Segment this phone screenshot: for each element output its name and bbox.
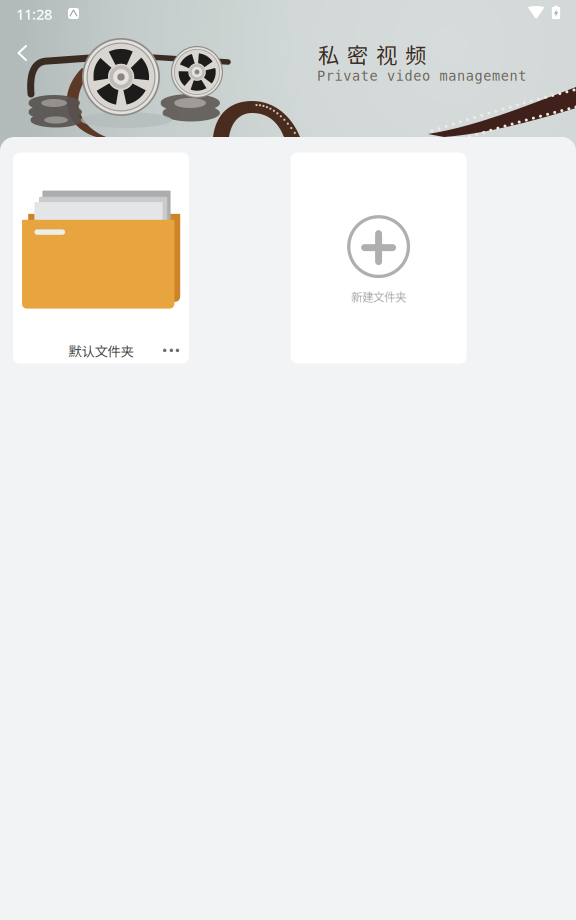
staticText: 新建文件夹 [351, 288, 406, 305]
staticText: 私密视频 [318, 39, 426, 69]
staticText: 11:28 [16, 4, 52, 24]
button[interactable]: Back [4, 38, 34, 68]
button[interactable]: 新建文件夹 [291, 153, 467, 364]
staticText: 默认文件夹 [68, 341, 133, 360]
staticText: Private video management [317, 68, 526, 84]
button[interactable]: 更多操作 [153, 337, 189, 365]
button[interactable]: 默认文件夹 [13, 153, 189, 364]
